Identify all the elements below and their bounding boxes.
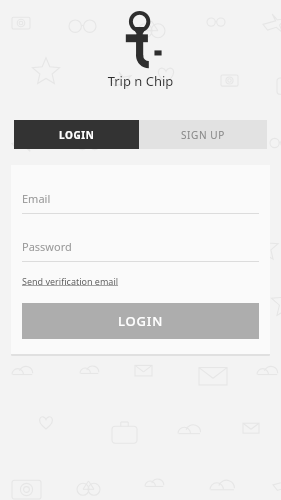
- button[interactable]: LOGIN: [22, 303, 259, 339]
- staticText: LOGIN: [59, 128, 95, 142]
- button[interactable]: SIGN UP: [139, 120, 267, 149]
- staticText: Password: [22, 239, 72, 254]
- button[interactable]: Email: [22, 191, 259, 214]
- button[interactable]: Password: [22, 239, 259, 262]
- staticText: Email: [22, 191, 51, 206]
- staticText: Send verification email: [22, 275, 119, 287]
- button[interactable]: LOGIN: [14, 120, 139, 149]
- staticText: Trip n Chip: [0, 72, 281, 90]
- staticText: LOGIN: [118, 312, 164, 330]
- button[interactable]: Send verification email: [22, 274, 119, 288]
- staticText: SIGN UP: [181, 128, 225, 142]
